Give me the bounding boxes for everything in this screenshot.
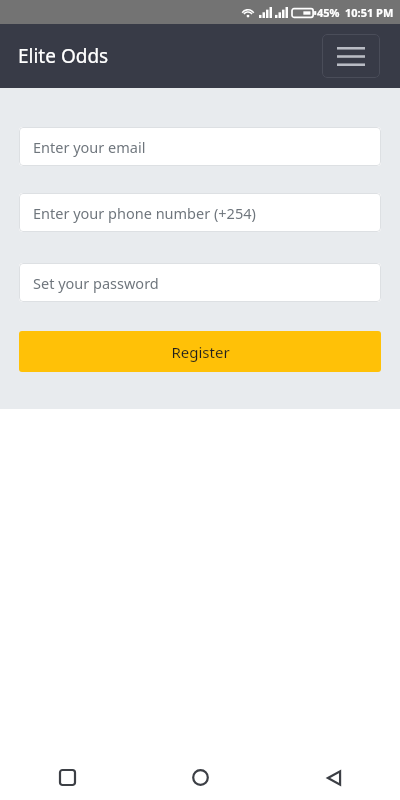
button[interactable]: Home bbox=[134, 755, 267, 800]
staticText: Set your password bbox=[33, 273, 159, 293]
staticText: 45% bbox=[317, 5, 340, 20]
button[interactable]: Back bbox=[267, 755, 400, 800]
button[interactable]: Register bbox=[19, 331, 381, 372]
button[interactable]: Open navigation menu bbox=[322, 34, 380, 78]
staticText: Elite Odds bbox=[18, 43, 109, 69]
button[interactable]: Enter your phone number (+254) bbox=[19, 193, 381, 232]
staticText: Register bbox=[171, 342, 230, 362]
staticText: Enter your phone number (+254) bbox=[33, 203, 256, 223]
button[interactable]: Recent apps bbox=[0, 755, 134, 800]
staticText: Enter your email bbox=[33, 137, 146, 157]
button[interactable]: Enter your email bbox=[19, 127, 381, 166]
button[interactable]: Set your password bbox=[19, 263, 381, 302]
staticText: 10:51 PM bbox=[345, 5, 394, 20]
